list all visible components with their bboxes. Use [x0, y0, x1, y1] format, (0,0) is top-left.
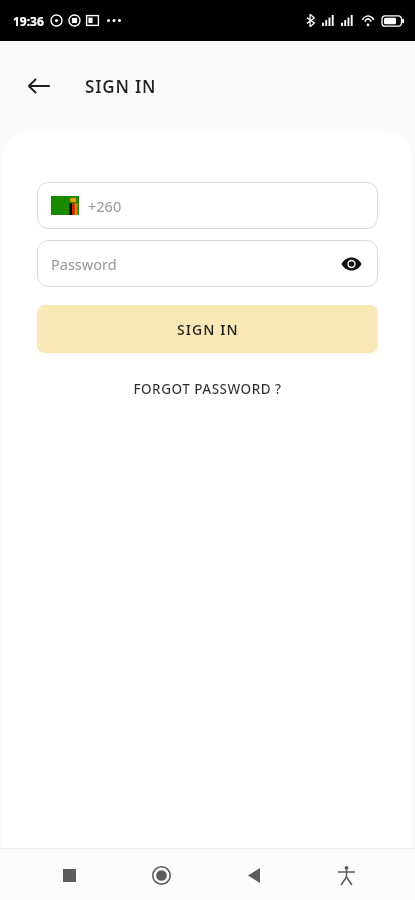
button[interactable]: Accessibility: [322, 851, 370, 899]
staticText: Password: [51, 254, 117, 274]
button[interactable]: +260: [37, 182, 378, 229]
staticText: 19:36: [13, 13, 44, 29]
button[interactable]: Back: [230, 851, 278, 899]
staticText: FORGOT PASSWORD ?: [133, 380, 282, 398]
button[interactable]: Recents: [45, 851, 93, 899]
button[interactable]: Home: [137, 851, 185, 899]
button[interactable]: Show password: [333, 246, 369, 282]
button[interactable]: FORGOT PASSWORD ?: [123, 376, 292, 402]
staticText: SIGN IN: [177, 320, 239, 339]
button[interactable]: SIGN IN: [37, 305, 378, 353]
button[interactable]: Password: [37, 240, 378, 287]
button[interactable]: Back: [15, 62, 63, 110]
staticText: SIGN IN: [85, 75, 157, 98]
staticText: +260: [88, 196, 122, 216]
